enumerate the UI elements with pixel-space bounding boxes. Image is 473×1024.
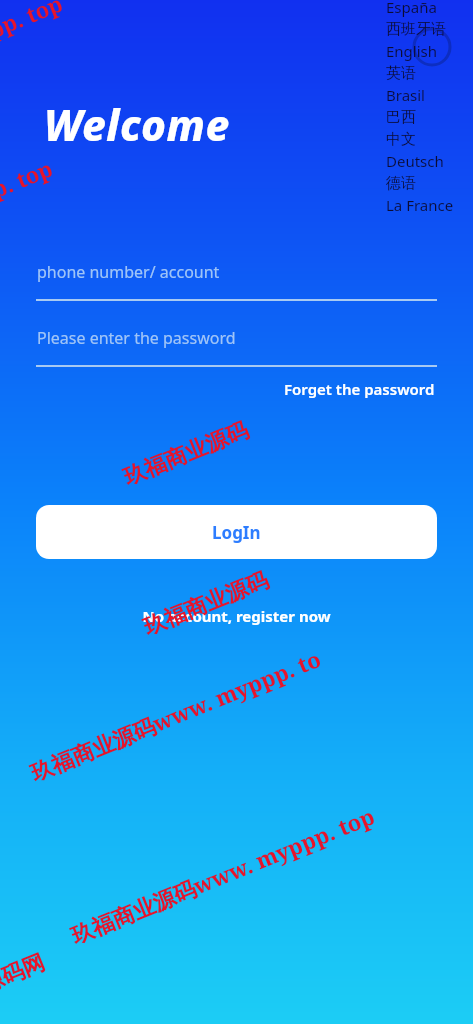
staticText: 英语 [386, 64, 416, 83]
button[interactable]: Please enter the password [36, 323, 437, 367]
staticText: 玖福商业源码www. myppp. top [66, 800, 379, 950]
button[interactable]: 巴西 [386, 106, 470, 128]
staticText: 玖福商业源码 [140, 566, 272, 642]
staticText: 玖福商业源码 [120, 416, 252, 492]
staticText: 玖福商业源码www. myppp. to [26, 643, 325, 787]
button[interactable]: La France [386, 194, 470, 216]
button[interactable]: 德语 [386, 172, 470, 194]
staticText: Forget the password [284, 379, 435, 399]
button[interactable]: España [386, 0, 470, 18]
staticText: 源码网 [0, 949, 49, 999]
button[interactable]: Brasil [386, 84, 470, 106]
staticText: myppp. top [0, 152, 57, 227]
button[interactable]: 中文 [386, 128, 470, 150]
button[interactable]: Deutsch [386, 150, 470, 172]
staticText: 巴西 [386, 108, 416, 127]
button[interactable]: 英语 [386, 62, 470, 84]
staticText: 中文 [386, 130, 416, 149]
staticText: 西班牙语 [386, 20, 446, 39]
button[interactable]: 西班牙语 [386, 18, 470, 40]
staticText: LogIn [212, 521, 261, 544]
staticText: La France [386, 195, 454, 215]
button[interactable]: No account, register now [134, 600, 339, 632]
staticText: Please enter the password [37, 327, 236, 349]
staticText: 德语 [386, 174, 416, 193]
staticText: myppp. top [0, 0, 67, 62]
staticText: No account, register now [142, 606, 331, 626]
staticText: English [386, 41, 438, 61]
staticText: phone number/ account [37, 261, 220, 283]
staticText: Brasil [386, 85, 425, 105]
staticText: Deutsch [386, 151, 444, 171]
button[interactable]: phone number/ account [36, 257, 437, 301]
button[interactable]: Forget the password [282, 373, 437, 405]
button[interactable]: English [386, 40, 470, 62]
button[interactable]: LogIn [36, 505, 437, 559]
staticText: Welcome [44, 96, 230, 153]
staticText: España [386, 0, 437, 17]
